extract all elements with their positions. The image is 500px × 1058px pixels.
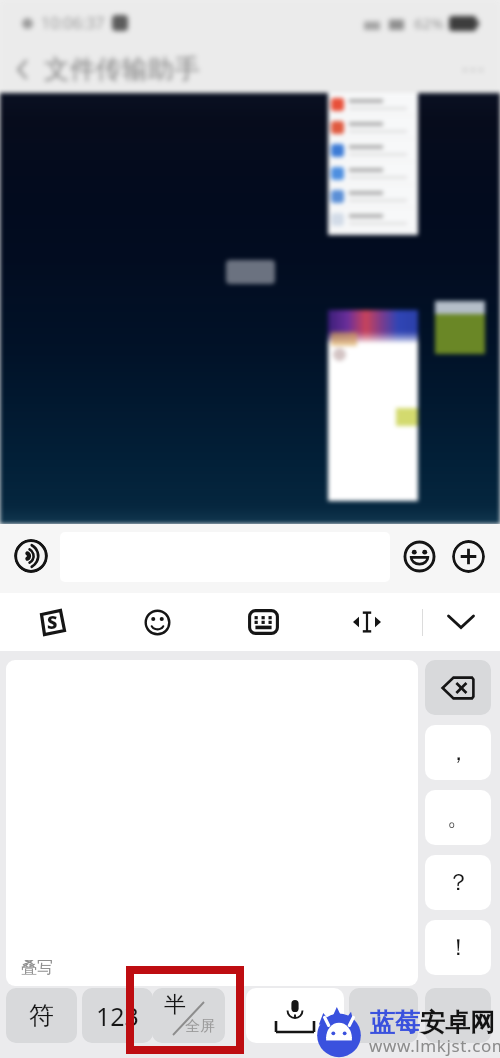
staticText: 10:06:37 — [41, 12, 105, 34]
staticText: ？ — [447, 868, 470, 897]
staticText: 蓝莓 — [370, 1007, 420, 1038]
button[interactable]: key — [425, 725, 491, 780]
staticText: 全屏 — [185, 1017, 215, 1036]
staticText: 安卓网 — [420, 1007, 495, 1038]
staticText: 半 — [164, 991, 186, 1019]
button[interactable]: key — [425, 855, 491, 910]
staticText: 。 — [447, 803, 470, 832]
button[interactable]: 叠写 — [6, 660, 418, 986]
button[interactable]: Move cursor — [351, 593, 383, 651]
staticText: 62% — [414, 13, 444, 33]
button[interactable]: enter — [349, 988, 418, 1043]
button[interactable]: space — [246, 988, 344, 1043]
staticText: S — [47, 610, 58, 635]
button[interactable] — [328, 310, 418, 501]
button[interactable]: Sogou input — [36, 593, 68, 651]
button[interactable]: More — [446, 46, 500, 93]
staticText: 符 — [29, 1000, 54, 1031]
button[interactable]: numbers — [82, 988, 153, 1043]
button[interactable]: half or full screen — [152, 988, 225, 1043]
button[interactable]: key — [425, 920, 491, 975]
button[interactable]: Hide keyboard — [445, 593, 477, 651]
staticText: 123 — [96, 999, 139, 1033]
button[interactable]: Emoji — [141, 593, 173, 651]
staticText: www.lmkjst.com — [369, 1034, 500, 1057]
button[interactable]: key — [425, 790, 491, 845]
staticText: ！ — [447, 933, 470, 962]
button[interactable]: More options — [452, 540, 485, 573]
button[interactable] — [328, 83, 418, 235]
staticText: 叠写 — [21, 958, 53, 978]
button[interactable]: key — [425, 660, 491, 715]
button[interactable]: symbols — [6, 988, 77, 1043]
button[interactable]: Keyboard — [247, 593, 279, 651]
staticText: ， — [447, 738, 470, 767]
button[interactable]: Back — [0, 46, 44, 93]
button[interactable]: key — [425, 988, 491, 1043]
button[interactable]: Voice input — [14, 539, 48, 573]
staticText: 文件传输助手 — [44, 53, 200, 86]
button[interactable]: Emoji — [403, 540, 436, 573]
